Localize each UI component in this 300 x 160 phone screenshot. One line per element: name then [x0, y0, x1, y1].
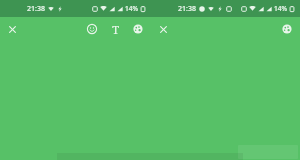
staticText: 21:38	[27, 4, 45, 14]
button[interactable]: Close	[3, 20, 21, 38]
button[interactable]: Draw	[278, 20, 296, 38]
button[interactable]: Stickers	[83, 20, 101, 38]
staticText: 21:38	[178, 4, 196, 14]
staticText: 14%	[274, 4, 287, 13]
staticText: T	[112, 22, 119, 37]
staticText: 14%	[125, 4, 138, 13]
button[interactable]: Add text	[106, 20, 124, 38]
button[interactable]: Draw	[129, 20, 147, 38]
button[interactable]: Close	[154, 20, 172, 38]
